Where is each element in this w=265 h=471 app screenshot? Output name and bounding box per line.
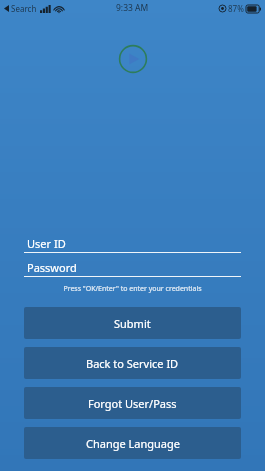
staticText: 87% (228, 3, 244, 14)
button[interactable]: User ID (24, 236, 241, 253)
staticText: Search (11, 3, 37, 14)
staticText: Change Language (86, 436, 180, 451)
staticText: User ID (27, 236, 66, 251)
button[interactable]: Password (24, 260, 241, 277)
staticText: Submit (114, 316, 151, 331)
button[interactable]: Forgot User/Pass (24, 387, 241, 419)
button[interactable]: Change Language (24, 427, 241, 459)
staticText: Password (27, 260, 77, 275)
staticText: 9:33 AM (116, 2, 149, 14)
staticText: Press "OK/Enter" to enter your credentia… (24, 284, 241, 294)
staticText: Forgot User/Pass (88, 396, 177, 411)
staticText: Back to Service ID (86, 356, 179, 371)
button[interactable]: Back to Service ID (24, 347, 241, 379)
other: App logo (118, 44, 148, 74)
button[interactable]: Submit (24, 307, 241, 339)
